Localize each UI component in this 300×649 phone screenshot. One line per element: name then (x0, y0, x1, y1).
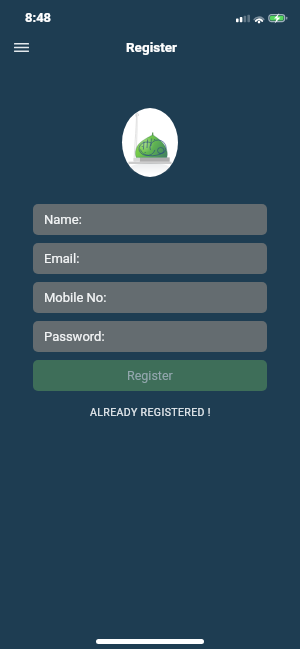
button[interactable]: ALREADY REGISTERED ! (90, 406, 211, 418)
button[interactable]: Name: (33, 204, 267, 235)
staticText: Register (126, 39, 177, 55)
staticText: Password: (44, 329, 105, 344)
staticText: Mobile No: (44, 290, 107, 305)
button[interactable]: Register (33, 360, 267, 391)
staticText: Email: (44, 251, 80, 266)
staticText: Name: (44, 212, 82, 227)
button[interactable]: Email: (33, 243, 267, 274)
button[interactable]: Open navigation menu (8, 35, 34, 59)
staticText: 8:48 (25, 10, 52, 25)
staticText: Register (127, 368, 173, 383)
button[interactable]: Mobile No: (33, 282, 267, 313)
button[interactable]: Password: (33, 321, 267, 352)
